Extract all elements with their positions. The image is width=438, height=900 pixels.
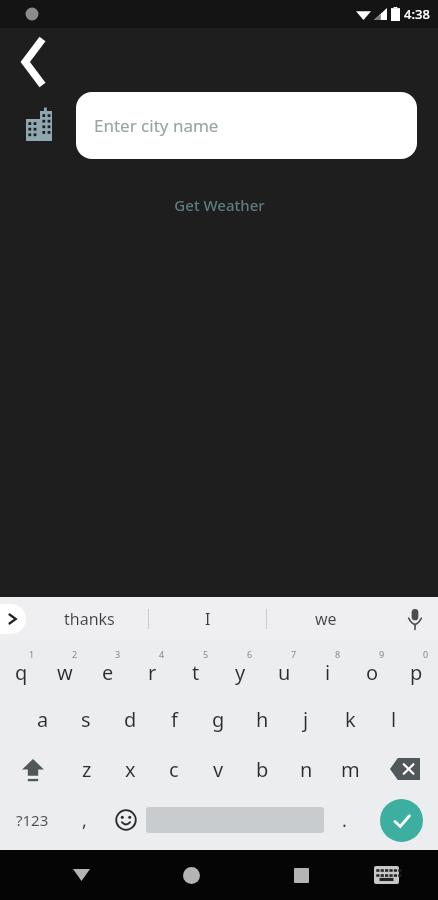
button[interactable]: Enter — [365, 794, 438, 846]
button[interactable]: Switch keyboard — [348, 850, 424, 900]
staticText: 5 — [203, 648, 209, 660]
staticText: r — [148, 659, 157, 686]
staticText: m — [341, 756, 360, 783]
staticText: s — [81, 706, 91, 733]
button[interactable]: Get Weather — [158, 189, 281, 221]
button[interactable]: 7 — [262, 644, 306, 694]
button[interactable]: a — [21, 694, 64, 744]
button[interactable]: Close keyboard — [43, 850, 119, 900]
button[interactable]: Enter city name — [76, 92, 417, 159]
button[interactable]: 9 — [350, 644, 394, 694]
staticText: 2 — [72, 648, 78, 660]
button[interactable]: Emoji — [105, 794, 146, 846]
button[interactable]: d — [108, 694, 152, 744]
button[interactable]: m — [328, 744, 372, 794]
button[interactable]: f — [152, 694, 196, 744]
staticText: b — [256, 756, 269, 783]
staticText: 0 — [423, 648, 429, 660]
button[interactable]: c — [152, 744, 196, 794]
staticText: q — [15, 659, 28, 686]
button[interactable]: Back — [8, 34, 64, 90]
staticText: I — [205, 608, 211, 630]
staticText: d — [124, 706, 137, 733]
button[interactable]: b — [240, 744, 284, 794]
button[interactable]: 2 — [43, 644, 86, 694]
button[interactable]: Expand suggestions — [0, 604, 26, 634]
button[interactable]: we — [267, 597, 384, 640]
button[interactable]: Backspace — [372, 744, 438, 794]
button[interactable]: ?123 — [0, 794, 64, 846]
staticText: k — [345, 706, 356, 733]
staticText: . — [342, 808, 347, 833]
staticText: n — [300, 756, 313, 783]
staticText: 1 — [29, 648, 35, 660]
staticText: f — [171, 706, 178, 733]
staticText: c — [169, 756, 179, 783]
button[interactable]: j — [284, 694, 328, 744]
button[interactable]: 3 — [86, 644, 130, 694]
staticText: t — [192, 659, 200, 686]
staticText: 4 — [159, 648, 165, 660]
staticText: thanks — [64, 608, 115, 630]
staticText: 4:38 — [404, 5, 430, 23]
button[interactable]: 8 — [306, 644, 350, 694]
staticText: Get Weather — [174, 195, 265, 215]
staticText: x — [125, 756, 136, 783]
button[interactable]: , — [64, 794, 105, 846]
button[interactable]: I — [149, 597, 266, 640]
staticText: o — [366, 659, 379, 686]
staticText: 6 — [247, 648, 253, 660]
staticText: l — [391, 706, 397, 733]
staticText: h — [256, 706, 269, 733]
button[interactable]: l — [372, 694, 416, 744]
button[interactable]: 1 — [0, 644, 43, 694]
button[interactable]: n — [284, 744, 328, 794]
button[interactable]: z — [65, 744, 108, 794]
button[interactable]: Shift — [0, 744, 65, 794]
button[interactable]: 4 — [130, 644, 174, 694]
button[interactable]: Home — [153, 850, 229, 900]
staticText: 8 — [335, 648, 341, 660]
staticText: v — [213, 756, 224, 783]
button[interactable]: 5 — [174, 644, 218, 694]
staticText: , — [82, 808, 87, 833]
button[interactable]: Space — [146, 806, 324, 834]
staticText: we — [315, 608, 337, 630]
staticText: ?123 — [16, 810, 49, 830]
staticText: u — [278, 659, 291, 686]
staticText: Enter city name — [94, 114, 219, 137]
staticText: y — [235, 659, 246, 686]
staticText: p — [410, 659, 423, 686]
button[interactable]: 6 — [218, 644, 262, 694]
staticText: w — [57, 659, 73, 686]
button[interactable]: Voice input — [392, 597, 438, 640]
button[interactable]: 0 — [394, 644, 438, 694]
button[interactable]: x — [108, 744, 152, 794]
staticText: a — [37, 706, 49, 733]
button[interactable]: k — [328, 694, 372, 744]
button[interactable]: h — [240, 694, 284, 744]
button[interactable]: Recents — [263, 850, 339, 900]
staticText: z — [82, 756, 92, 783]
staticText: 7 — [291, 648, 297, 660]
staticText: e — [102, 659, 114, 686]
staticText: 9 — [379, 648, 385, 660]
button[interactable]: v — [196, 744, 240, 794]
button[interactable]: g — [196, 694, 240, 744]
staticText: 3 — [115, 648, 121, 660]
staticText: g — [212, 706, 225, 733]
staticText: i — [325, 659, 331, 686]
button[interactable]: . — [324, 794, 365, 846]
button[interactable]: thanks — [30, 597, 148, 640]
button[interactable]: s — [64, 694, 108, 744]
staticText: j — [303, 706, 309, 733]
